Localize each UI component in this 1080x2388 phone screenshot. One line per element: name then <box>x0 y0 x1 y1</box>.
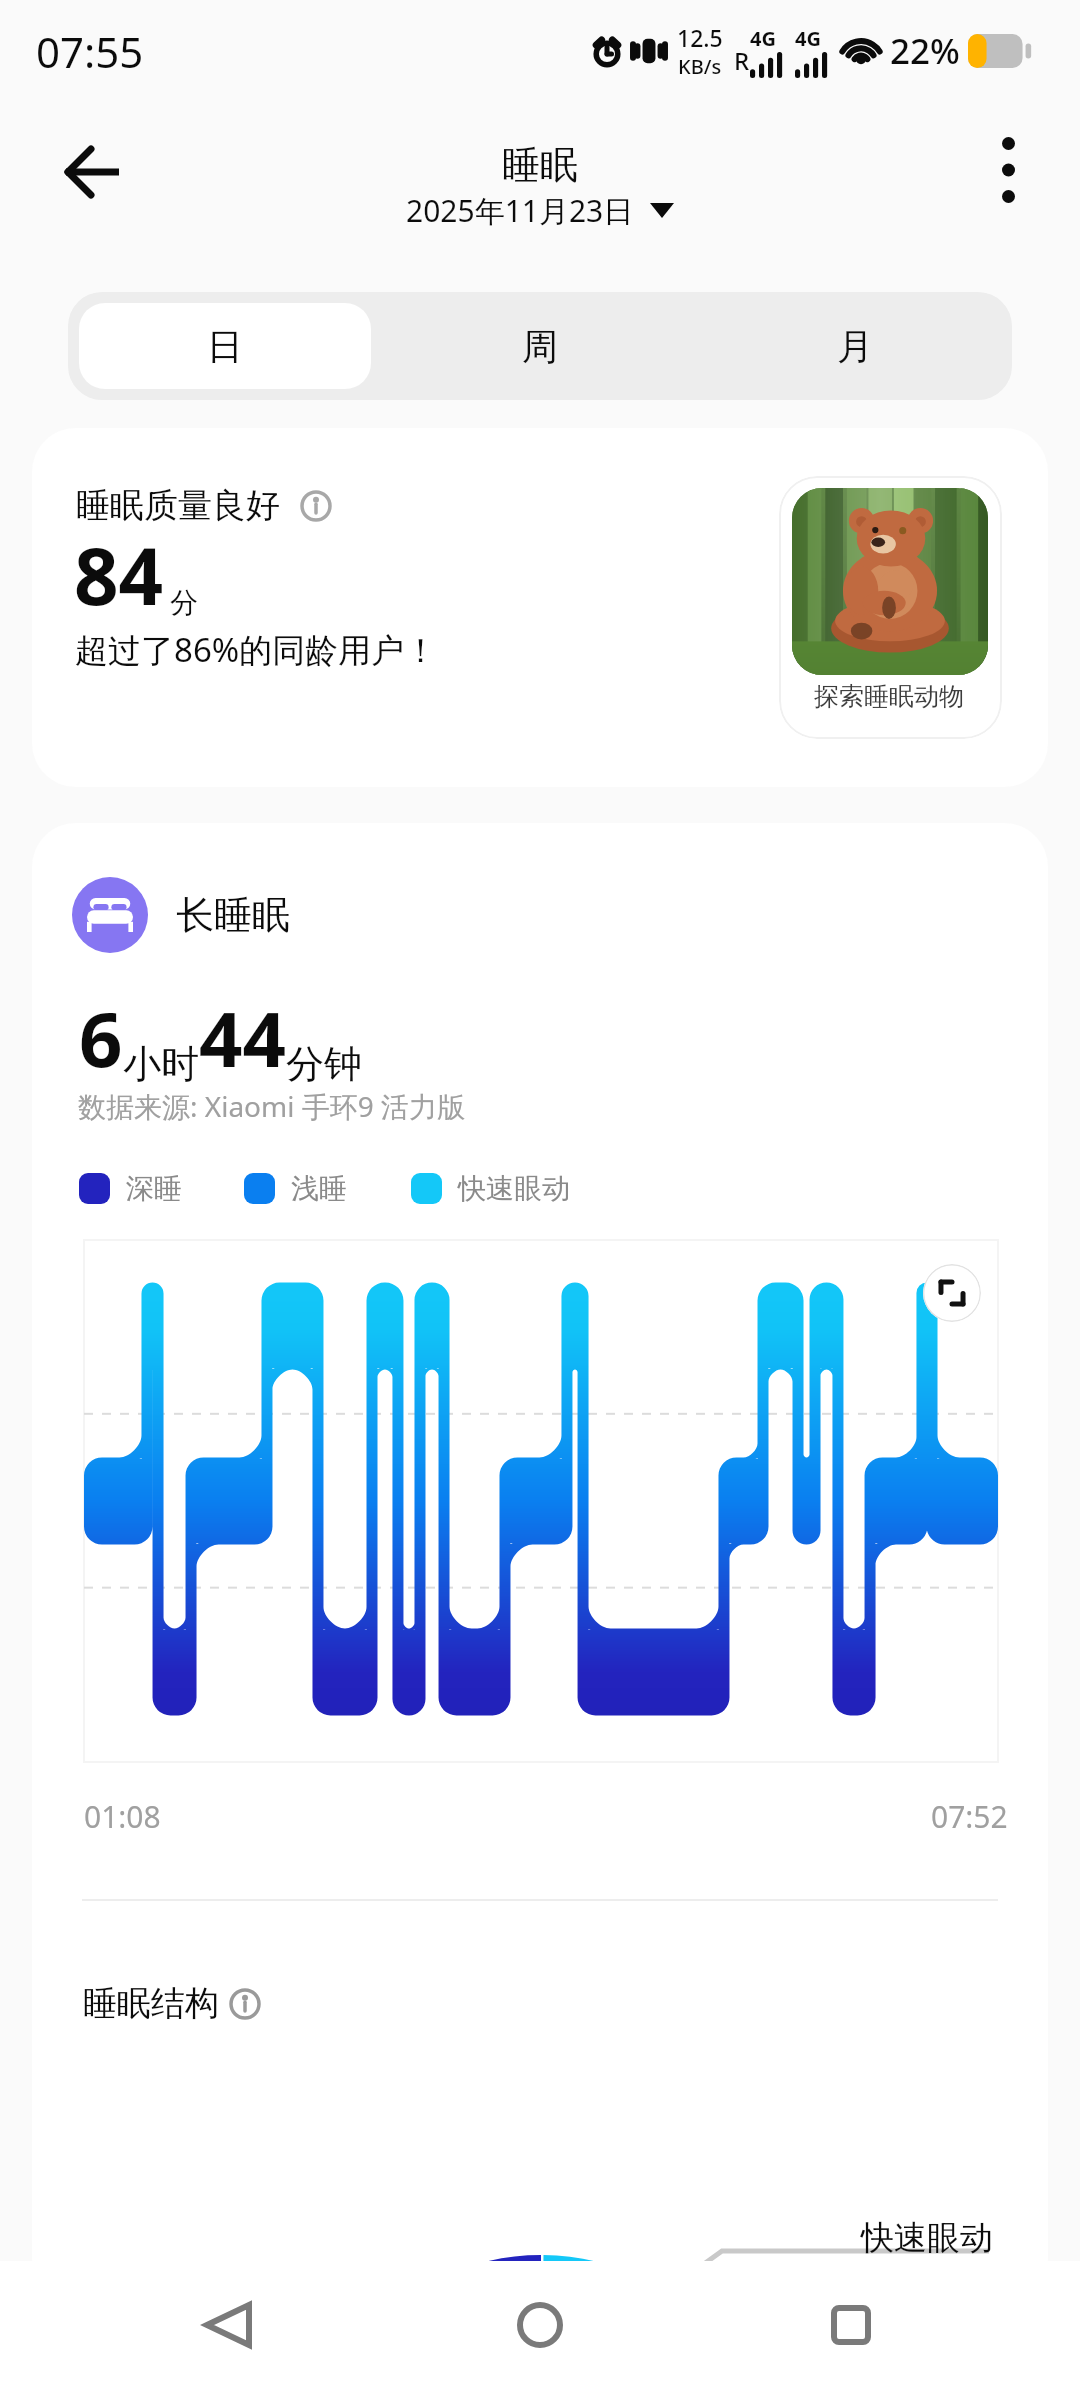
staticText: 01:08 <box>84 1796 161 1837</box>
staticText: 浅睡 <box>291 1171 347 1206</box>
staticText: 睡眠 <box>502 141 578 189</box>
staticText: 睡眠质量良好 <box>76 484 280 527</box>
staticText: 分 <box>170 585 198 620</box>
button[interactable]: Expand chart <box>923 1264 981 1322</box>
staticText: 快速眼动 <box>861 2217 993 2259</box>
staticText: 长睡眠 <box>176 891 290 939</box>
button[interactable]: Back <box>40 120 144 224</box>
staticText: 周 <box>522 324 558 369</box>
button[interactable]: 日 <box>79 303 371 389</box>
staticText: 84 <box>74 522 164 628</box>
staticText: 快速眼动 <box>458 1171 570 1206</box>
button[interactable]: Back <box>173 2270 283 2380</box>
staticText: 深睡 <box>126 1171 182 1206</box>
staticText: 22% <box>890 27 960 75</box>
staticText: R <box>734 44 750 77</box>
staticText: 12.5 <box>677 22 723 53</box>
staticText: 44 <box>199 986 286 1090</box>
button[interactable]: Recents <box>796 2270 906 2380</box>
staticText: 小时 <box>123 1040 199 1088</box>
staticText: 2025年11月23日 <box>406 190 634 231</box>
staticText: 分钟 <box>286 1040 362 1088</box>
button[interactable]: Home <box>485 2270 595 2380</box>
staticText: 月 <box>837 324 873 369</box>
staticText: 4G <box>750 25 776 52</box>
staticText: 睡眠结构 <box>83 1982 219 2025</box>
staticText: 6 <box>79 986 123 1090</box>
staticText: 07:52 <box>931 1796 1008 1837</box>
staticText: 日 <box>207 324 243 369</box>
button[interactable]: 探索睡眠动物 <box>779 476 1002 739</box>
button[interactable]: 月 <box>708 303 1001 389</box>
staticText: KB/s <box>678 53 722 80</box>
staticText: 07:55 <box>36 23 144 80</box>
staticText: 数据来源: Xiaomi 手环9 活力版 <box>78 1087 466 1125</box>
button[interactable]: More options <box>960 122 1056 218</box>
staticText: 超过了86%的同龄用户！ <box>75 627 438 672</box>
staticText: 探索睡眠动物 <box>814 681 964 712</box>
button[interactable]: 周 <box>393 303 686 389</box>
staticText: 4G <box>795 25 821 52</box>
